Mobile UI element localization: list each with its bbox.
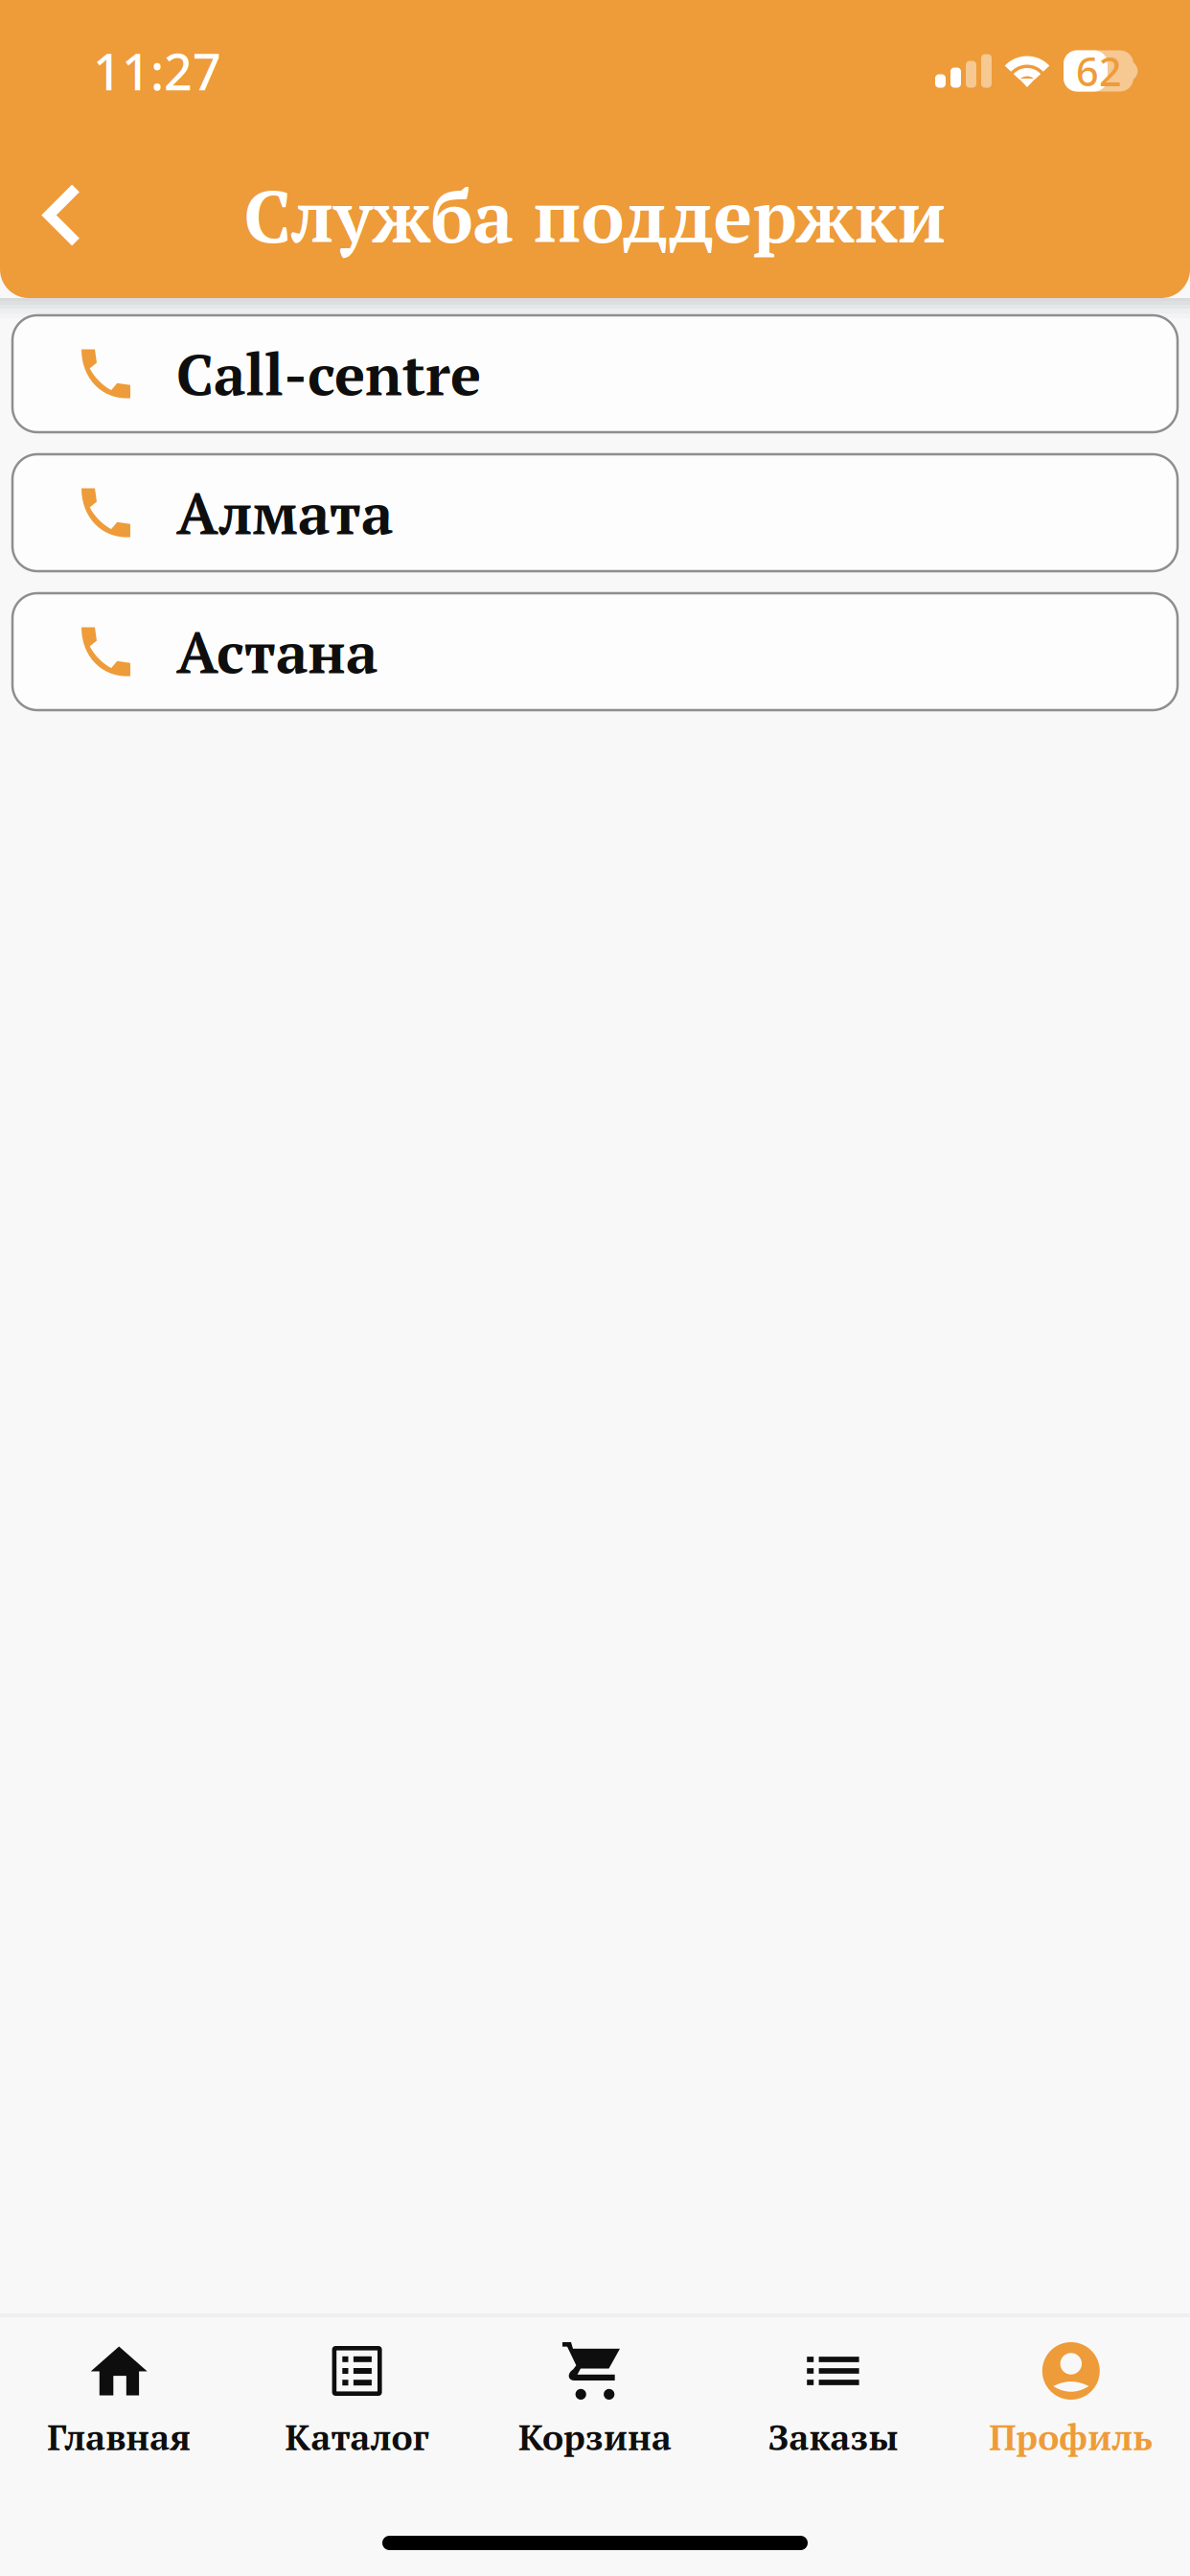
- staticText: 62: [1076, 45, 1122, 97]
- staticText: Астана: [176, 614, 378, 690]
- staticText: Call-centre: [176, 336, 481, 412]
- button[interactable]: Заказы: [714, 2342, 952, 2461]
- staticText: Главная: [47, 2413, 191, 2461]
- staticText: 11:27: [93, 38, 221, 104]
- button[interactable]: Алмата: [12, 454, 1178, 571]
- staticText: Профиль: [989, 2413, 1153, 2461]
- staticText: Служба поддержки: [244, 167, 946, 263]
- staticText: Корзина: [518, 2413, 672, 2461]
- button[interactable]: Каталог: [238, 2342, 476, 2461]
- button[interactable]: Корзина: [476, 2342, 714, 2461]
- staticText: Заказы: [768, 2413, 898, 2461]
- button[interactable]: Назад: [0, 159, 125, 272]
- staticText: Каталог: [285, 2413, 429, 2461]
- button[interactable]: Главная: [0, 2342, 238, 2461]
- button[interactable]: Астана: [12, 593, 1178, 710]
- button[interactable]: Профиль: [952, 2342, 1190, 2461]
- button[interactable]: Call-centre: [12, 315, 1178, 432]
- staticText: Алмата: [176, 475, 393, 551]
